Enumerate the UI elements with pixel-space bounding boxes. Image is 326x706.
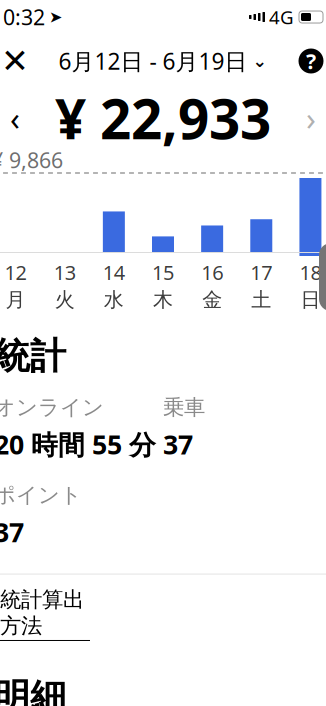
button[interactable]: Close bbox=[0, 39, 37, 83]
staticText: 12 bbox=[5, 259, 27, 286]
staticText: 17 bbox=[250, 259, 272, 286]
staticText: オンライン bbox=[0, 394, 104, 420]
staticText: 水 bbox=[104, 288, 124, 312]
staticText: 金 bbox=[202, 288, 222, 312]
staticText: ? bbox=[306, 47, 316, 75]
button[interactable]: Open panel bbox=[319, 243, 326, 311]
staticText: 15 bbox=[152, 259, 174, 286]
staticText: 37 bbox=[0, 514, 24, 550]
staticText: 13 bbox=[54, 259, 76, 286]
staticText: ➤ bbox=[49, 8, 62, 26]
staticText: 20 時間 55 分 bbox=[0, 426, 156, 462]
button[interactable]: Next week bbox=[289, 96, 326, 140]
staticText: 4G bbox=[269, 5, 294, 29]
button[interactable]: 統計算出方法 bbox=[0, 575, 326, 653]
staticText: 37 bbox=[163, 426, 193, 462]
staticText: 18 bbox=[299, 259, 321, 286]
staticText: 木 bbox=[153, 288, 173, 312]
staticText: 土 bbox=[251, 288, 271, 312]
staticText: ⌄ bbox=[252, 51, 267, 71]
staticText: 6月12日 - 6月19日 bbox=[58, 46, 247, 76]
staticText: ¥ 9,866 bbox=[0, 146, 63, 174]
staticText: 日 bbox=[300, 288, 320, 312]
staticText: ‹ bbox=[10, 97, 20, 139]
staticText: ¥ 22,933 bbox=[55, 82, 271, 154]
staticText: ポイント bbox=[0, 482, 82, 508]
staticText: 明細 bbox=[0, 675, 66, 706]
staticText: 統計 bbox=[0, 334, 66, 378]
staticText: 16 bbox=[201, 259, 223, 286]
staticText: 統計算出方法 bbox=[0, 587, 84, 639]
staticText: 月 bbox=[6, 288, 26, 312]
staticText: 0:32 bbox=[3, 3, 45, 31]
staticText: 乗車 bbox=[163, 394, 205, 420]
staticText: 14 bbox=[103, 259, 125, 286]
button[interactable]: Previous week bbox=[0, 96, 37, 140]
button[interactable]: Help bbox=[289, 39, 326, 83]
staticText: ✕ bbox=[1, 42, 29, 80]
staticText: 火 bbox=[55, 288, 75, 312]
staticText: › bbox=[306, 97, 316, 139]
